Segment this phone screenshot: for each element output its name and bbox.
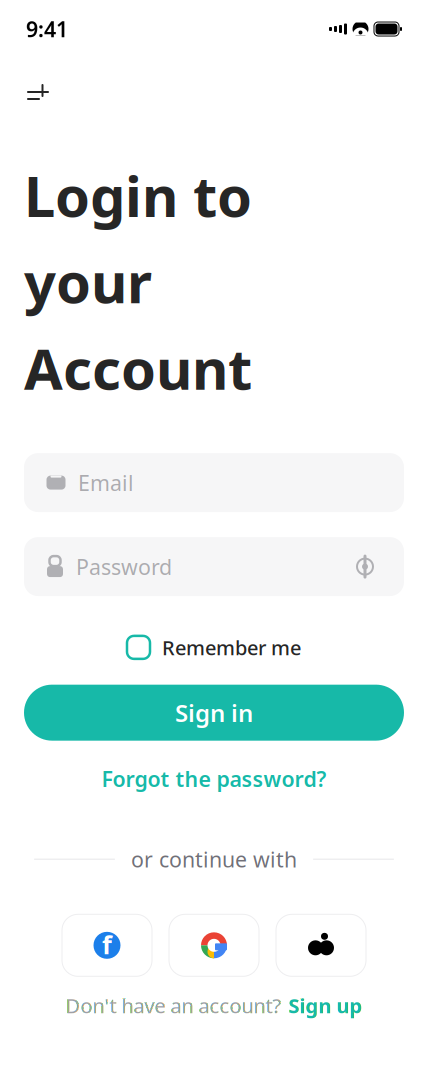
button[interactable]: Forgot the password? [91, 759, 336, 799]
staticText: Sign in [175, 697, 253, 729]
staticText: Login to your Account [24, 158, 252, 405]
button[interactable]: Continue with Facebook [62, 914, 152, 976]
staticText: Forgot the password? [101, 765, 326, 793]
button[interactable]: Remember me [123, 628, 305, 667]
button[interactable]: Show password [348, 550, 382, 584]
button[interactable]: Continue with Google [169, 914, 259, 976]
staticText: Email [78, 468, 134, 497]
staticText: Remember me [162, 634, 301, 661]
button[interactable]: Back [18, 72, 58, 112]
staticText: Password [76, 552, 172, 581]
staticText: Sign up [288, 992, 362, 1019]
button[interactable]: Don't have an account? [53, 984, 374, 1027]
button[interactable]: Continue with Apple [276, 914, 366, 976]
button[interactable]: Sign in [24, 685, 404, 741]
staticText: Don't have an account? [65, 992, 281, 1019]
staticText: f [102, 927, 112, 961]
staticText: or continue with [131, 845, 297, 873]
